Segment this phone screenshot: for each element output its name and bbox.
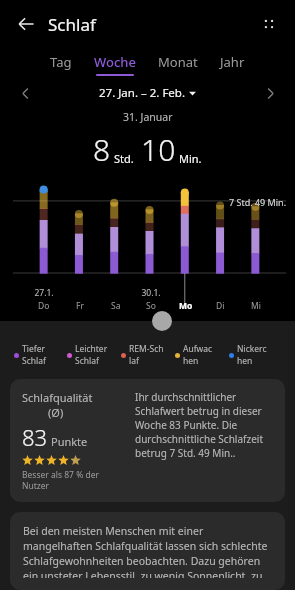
button[interactable]: Bei den meisten Menschen mit einer mange… bbox=[10, 512, 285, 590]
staticText: Monat bbox=[158, 53, 198, 71]
staticText: Aufwac bbox=[183, 343, 213, 355]
button[interactable]: Nächste Woche bbox=[257, 80, 283, 106]
staticText: Schlaf bbox=[22, 355, 46, 367]
button[interactable]: Jahr bbox=[216, 53, 249, 74]
button[interactable]: Woche bbox=[90, 53, 140, 76]
staticText: Woche bbox=[94, 53, 136, 71]
staticText: 83 bbox=[22, 422, 48, 452]
button[interactable]: Zurück bbox=[8, 6, 44, 42]
staticText: (Ø) bbox=[48, 405, 64, 420]
staticText: Min. bbox=[179, 151, 202, 166]
staticText: Schlaf bbox=[75, 355, 99, 367]
staticText: So bbox=[146, 300, 156, 312]
button[interactable]: Tag bbox=[46, 53, 76, 74]
staticText: hen bbox=[183, 355, 199, 367]
staticText: 31. Januar bbox=[123, 110, 173, 124]
staticText: Do bbox=[38, 300, 50, 312]
button[interactable]: 27. Jan. – 2. Feb. bbox=[99, 85, 196, 101]
staticText: Tiefer bbox=[22, 343, 45, 355]
button[interactable]: Monat bbox=[154, 53, 202, 74]
staticText: Fr bbox=[76, 300, 84, 312]
staticText: Std. bbox=[114, 151, 134, 166]
staticText: Di bbox=[216, 300, 225, 312]
staticText: Schlafqualität bbox=[22, 390, 93, 405]
staticText: 10 bbox=[141, 129, 176, 170]
button[interactable]: Tag auswählen bbox=[152, 311, 172, 331]
button[interactable]: Schlafqualität bbox=[10, 379, 285, 502]
staticText: Nickerc bbox=[237, 343, 267, 355]
staticText: Punkte bbox=[51, 434, 88, 449]
staticText: Sa bbox=[111, 300, 121, 312]
staticText: 30.1. bbox=[141, 287, 161, 299]
staticText: 27.1. bbox=[34, 287, 54, 299]
staticText: Ihr durchschnittlicher Schlafwert betrug… bbox=[135, 390, 273, 460]
staticText: 27. Jan. – 2. Feb. bbox=[99, 85, 185, 101]
staticText: 7 Std. 49 Min. bbox=[229, 196, 287, 208]
button[interactable]: Mehr Optionen bbox=[251, 6, 287, 42]
staticText: Bei den meisten Menschen mit einer mange… bbox=[23, 524, 272, 578]
staticText: Besser als 87 % der Nutzer bbox=[22, 469, 99, 491]
staticText: REM-Sch bbox=[129, 343, 164, 355]
staticText: Jahr bbox=[220, 53, 245, 71]
staticText: Mi bbox=[251, 300, 261, 312]
staticText: Leichter bbox=[75, 343, 108, 355]
button[interactable]: Vorherige Woche bbox=[12, 80, 38, 106]
staticText: Tag bbox=[50, 53, 72, 71]
staticText: Mo bbox=[179, 300, 193, 312]
staticText: hen bbox=[237, 355, 253, 367]
staticText: Schlaf bbox=[48, 13, 96, 36]
staticText: laf bbox=[129, 355, 139, 367]
staticText: 8 bbox=[93, 129, 111, 170]
